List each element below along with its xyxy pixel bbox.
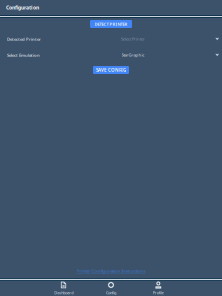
button[interactable]: Detected Printer xyxy=(0,31,222,47)
staticText: Dashboard xyxy=(54,290,73,295)
button[interactable]: DETECT PRINTER xyxy=(90,20,132,28)
button[interactable]: Profile xyxy=(135,281,182,296)
staticText: Configuration xyxy=(6,4,39,11)
staticText: SAVE CONFIG xyxy=(96,67,126,73)
staticText: StarGraphic xyxy=(121,52,144,58)
button[interactable]: Dashboard xyxy=(40,281,87,296)
button[interactable]: Select Emulation xyxy=(0,47,222,63)
staticText: Printer Configuration Instructions xyxy=(76,268,145,274)
button[interactable]: Config xyxy=(87,281,135,296)
staticText: DETECT PRINTER xyxy=(94,21,127,27)
staticText: Select Printer xyxy=(121,36,145,42)
staticText: Config xyxy=(106,290,116,295)
staticText: Select Emulation xyxy=(7,52,40,58)
button[interactable]: Printer Configuration Instructions xyxy=(76,267,145,275)
staticText: Profile xyxy=(153,290,164,295)
staticText: Detected Printer xyxy=(7,36,41,42)
button[interactable]: SAVE CONFIG xyxy=(93,66,129,74)
